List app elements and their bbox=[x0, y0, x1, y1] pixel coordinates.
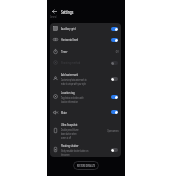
staticText: screen is off bbox=[61, 136, 71, 140]
button[interactable]: Shooting method bbox=[50, 57, 121, 68]
staticText: Auxiliary grid bbox=[61, 26, 76, 31]
staticText: Horizontal level bbox=[61, 37, 78, 42]
button[interactable]: Toggle bbox=[111, 61, 118, 65]
staticText: make it unique with your style bbox=[61, 82, 86, 86]
staticText: the screen bbox=[61, 153, 70, 157]
staticText: Location tag bbox=[61, 90, 75, 95]
staticText: location information bbox=[61, 100, 78, 104]
other: Back bbox=[52, 9, 57, 14]
button[interactable]: Location tag bbox=[50, 87, 121, 106]
button[interactable]: Open camera bbox=[103, 129, 118, 133]
staticText: Shooting method bbox=[61, 60, 81, 65]
button[interactable]: Floating shutter bbox=[50, 142, 121, 157]
staticText: Add watermark bbox=[61, 72, 78, 77]
button[interactable]: Back bbox=[47, 7, 125, 16]
button[interactable]: Ultra Snapshot bbox=[50, 119, 121, 142]
button[interactable]: Auxiliary grid bbox=[50, 23, 121, 34]
button[interactable]: Toggle bbox=[111, 148, 118, 152]
button[interactable]: Toggle bbox=[111, 110, 118, 114]
staticText: Customize photo watermark to bbox=[61, 78, 87, 82]
staticText: Ultra Snapshot bbox=[61, 122, 78, 127]
staticText: Sticky movable shutter button on bbox=[61, 149, 88, 153]
staticText: Floating shutter bbox=[61, 143, 79, 148]
button[interactable]: Mute bbox=[50, 106, 121, 118]
button[interactable]: Off bbox=[103, 50, 118, 54]
button[interactable]: Toggle bbox=[111, 77, 118, 81]
staticText: Tag photos and videos with bbox=[61, 96, 84, 100]
button[interactable]: Horizontal level bbox=[50, 34, 121, 45]
staticText: Double press Volume bbox=[61, 128, 79, 132]
staticText: down button when bbox=[61, 132, 77, 136]
button[interactable]: Toggle bbox=[111, 27, 118, 31]
button[interactable]: Add watermark bbox=[50, 69, 121, 88]
button[interactable]: Timer bbox=[50, 46, 121, 57]
staticText: Settings bbox=[61, 8, 73, 15]
button[interactable]: Toggle bbox=[111, 95, 118, 99]
staticText: RESTORE DEFAULTS bbox=[77, 163, 96, 168]
staticText: General bbox=[50, 15, 57, 19]
staticText: Timer bbox=[61, 49, 68, 54]
staticText: Mute bbox=[61, 110, 67, 115]
button[interactable]: Toggle bbox=[111, 38, 118, 42]
button[interactable]: RESTORE DEFAULTS bbox=[73, 161, 99, 170]
